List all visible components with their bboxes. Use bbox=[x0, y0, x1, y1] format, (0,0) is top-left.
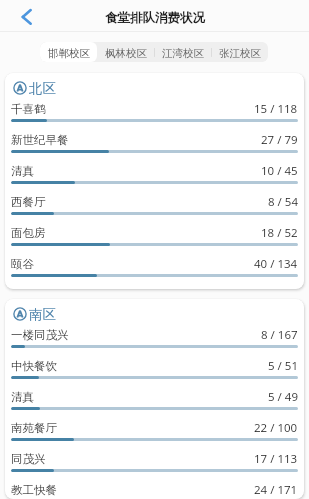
staticText: 24 / 171 bbox=[254, 482, 298, 498]
staticText: 中快餐饮 bbox=[11, 359, 57, 373]
staticText: 8 / 54 bbox=[268, 194, 298, 210]
staticText: 颐谷 bbox=[11, 257, 34, 271]
staticText: 清真 bbox=[11, 390, 34, 404]
button[interactable]: 中快餐饮 bbox=[5, 358, 304, 389]
staticText: 40 / 134 bbox=[254, 256, 298, 272]
staticText: 西餐厅 bbox=[11, 195, 46, 209]
button[interactable]: 颐谷 bbox=[5, 256, 304, 287]
staticText: 同茂兴 bbox=[11, 452, 46, 466]
staticText: 5 / 49 bbox=[268, 389, 298, 405]
button[interactable]: 千喜鹤 bbox=[5, 101, 304, 132]
button[interactable]: 教工快餐 bbox=[5, 482, 304, 499]
staticText: 新世纪早餐 bbox=[11, 133, 69, 147]
staticText: 江湾校区 bbox=[162, 47, 204, 60]
staticText: 食堂排队消费状况 bbox=[105, 10, 205, 26]
button[interactable]: 面包房 bbox=[5, 225, 304, 256]
button[interactable]: 新世纪早餐 bbox=[5, 132, 304, 163]
staticText: 22 / 100 bbox=[254, 420, 298, 436]
staticText: 8 / 167 bbox=[261, 327, 298, 343]
button[interactable]: Back bbox=[12, 2, 39, 29]
button[interactable]: 张江校区 bbox=[211, 42, 268, 62]
button[interactable]: 江湾校区 bbox=[154, 42, 211, 62]
staticText: 北区 bbox=[29, 80, 56, 95]
staticText: 千喜鹤 bbox=[11, 102, 46, 116]
staticText: 一楼同茂兴 bbox=[11, 328, 69, 342]
staticText: 教工快餐 bbox=[11, 483, 57, 497]
button[interactable]: 清真 bbox=[5, 389, 304, 420]
staticText: 18 / 52 bbox=[261, 225, 298, 241]
staticText: 枫林校区 bbox=[105, 47, 147, 60]
staticText: 邯郸校区 bbox=[48, 47, 90, 60]
button[interactable]: 南苑餐厅 bbox=[5, 420, 304, 451]
button[interactable]: 一楼同茂兴 bbox=[5, 327, 304, 358]
staticText: 面包房 bbox=[11, 226, 46, 240]
staticText: 南苑餐厅 bbox=[11, 421, 57, 435]
staticText: 张江校区 bbox=[219, 47, 261, 60]
button[interactable]: 邯郸校区 bbox=[40, 42, 97, 62]
button[interactable]: 清真 bbox=[5, 163, 304, 194]
button[interactable]: 西餐厅 bbox=[5, 194, 304, 225]
button[interactable]: 枫林校区 bbox=[97, 42, 154, 62]
staticText: 清真 bbox=[11, 164, 34, 178]
staticText: 5 / 51 bbox=[268, 358, 298, 374]
staticText: 10 / 45 bbox=[261, 163, 298, 179]
staticText: 17 / 113 bbox=[254, 451, 298, 467]
staticText: 南区 bbox=[29, 306, 56, 321]
staticText: 15 / 118 bbox=[254, 101, 298, 117]
button[interactable]: 同茂兴 bbox=[5, 451, 304, 482]
staticText: 27 / 79 bbox=[261, 132, 298, 148]
